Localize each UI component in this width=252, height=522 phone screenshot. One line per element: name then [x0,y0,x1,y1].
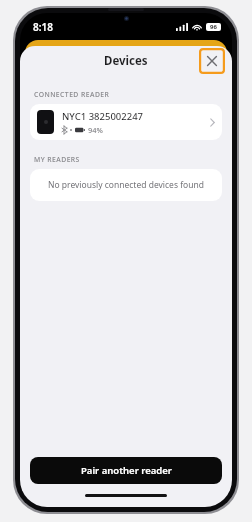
button[interactable]: NYC1 3825002247 [30,104,222,140]
staticText: 8:18 [33,20,53,34]
staticText: Devices [104,53,148,69]
staticText: MY READERS [34,155,80,164]
staticText: No previously connected devices found [48,179,204,191]
staticText: CONNECTED READER [34,90,110,99]
staticText: Pair another reader [81,464,172,477]
button[interactable]: Close [199,48,225,74]
staticText: 96 [210,23,217,31]
button[interactable]: Pair another reader [30,457,222,484]
staticText: NYC1 3825002247 [62,110,144,123]
staticText: 94% [88,125,103,135]
